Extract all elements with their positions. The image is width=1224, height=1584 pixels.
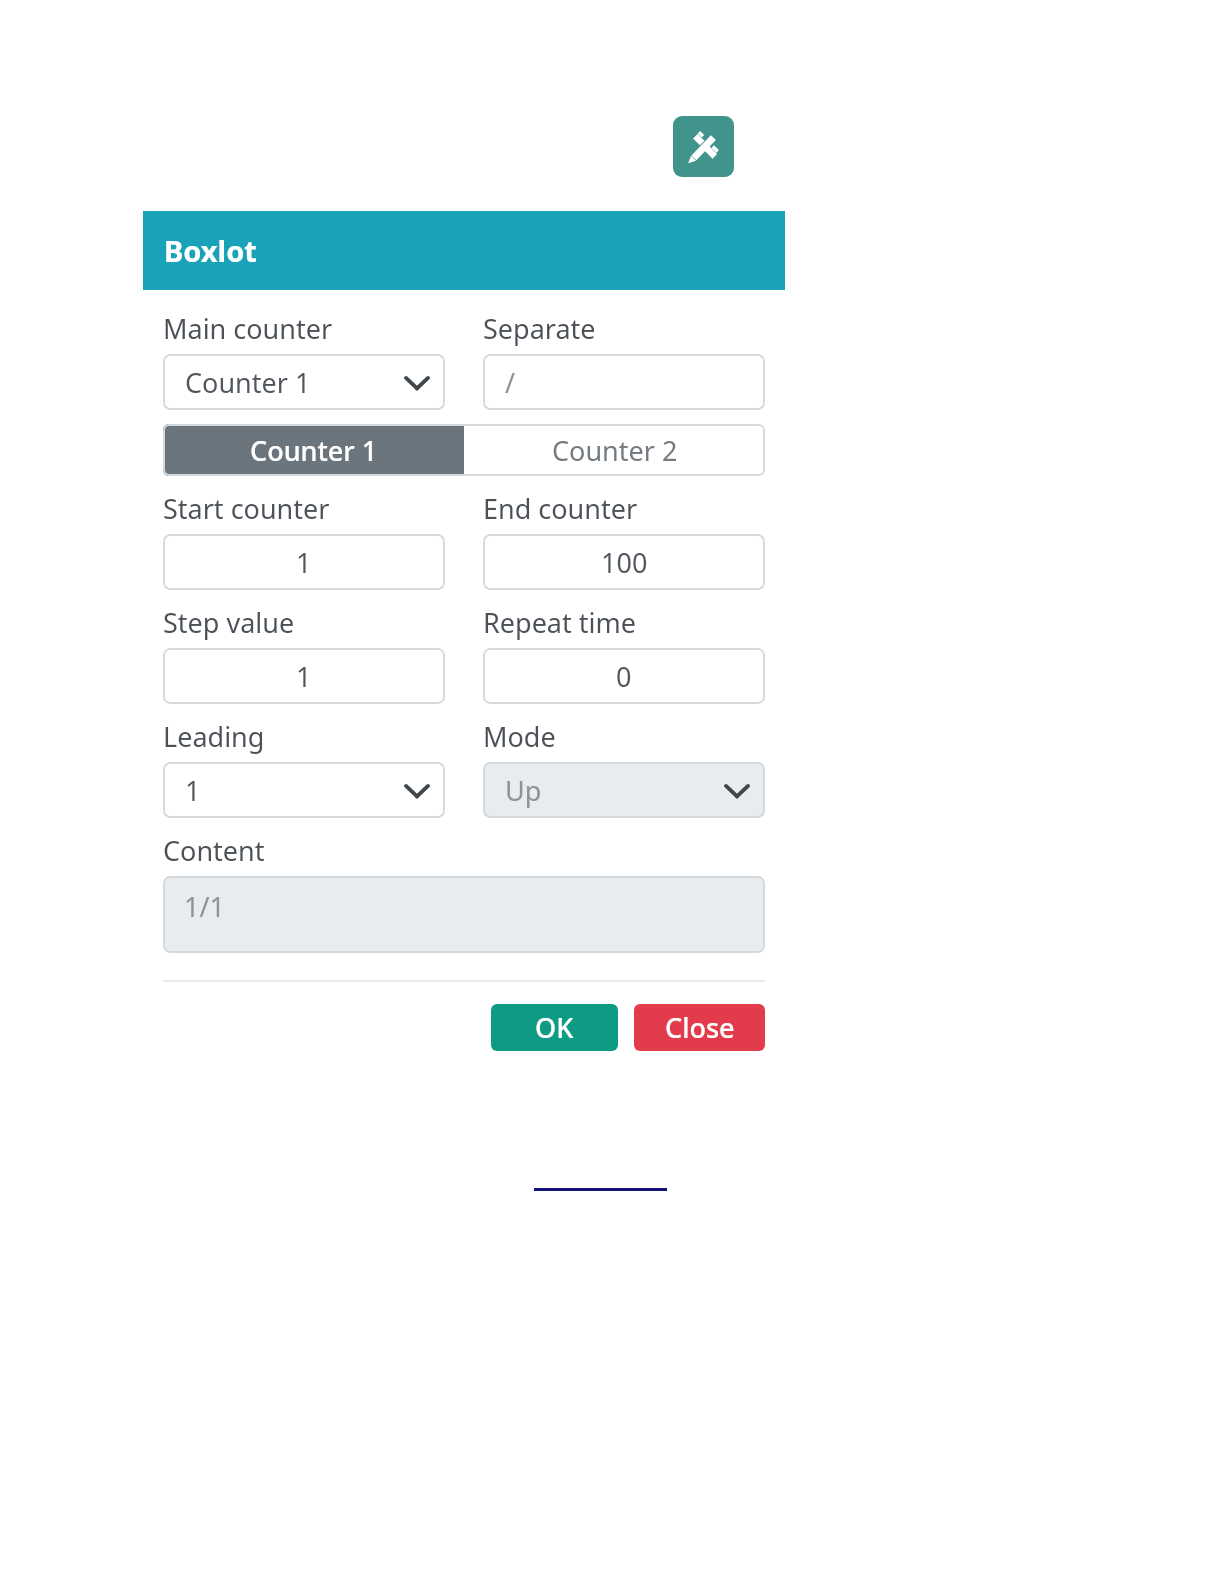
staticText: Mode — [483, 718, 556, 755]
staticText: Step value — [163, 604, 295, 641]
staticText: 1 — [296, 658, 312, 695]
staticText: Repeat time — [483, 604, 636, 641]
button[interactable]: Design tools — [673, 116, 734, 177]
staticText: 1 — [296, 544, 312, 581]
staticText: Content — [163, 832, 265, 869]
button[interactable]: / — [483, 354, 765, 410]
staticText: 1/1 — [184, 888, 225, 925]
staticText: OK — [535, 1009, 574, 1046]
button[interactable]: 1 — [163, 762, 445, 818]
staticText: End counter — [483, 490, 638, 527]
button[interactable]: Counter 1 — [163, 354, 445, 410]
staticText: / — [505, 364, 516, 401]
button[interactable]: 100 — [483, 534, 765, 590]
button[interactable]: 1/1 — [163, 876, 765, 953]
button[interactable]: 1 — [163, 648, 445, 704]
button[interactable]: 0 — [483, 648, 765, 704]
staticText: Counter 2 — [552, 432, 678, 469]
staticText: 0 — [616, 658, 632, 695]
button[interactable]: Up — [483, 762, 765, 818]
staticText: 100 — [601, 544, 648, 581]
staticText: Counter 1 — [185, 364, 406, 401]
button[interactable]: Counter 2 — [464, 424, 765, 476]
button[interactable]: 1 — [163, 534, 445, 590]
staticText: Counter 1 — [250, 432, 378, 469]
button[interactable]: Counter 1 — [163, 424, 464, 476]
staticText: Close — [665, 1009, 735, 1046]
staticText: Main counter — [163, 310, 333, 347]
staticText: Separate — [483, 310, 596, 347]
staticText: 1 — [185, 772, 406, 809]
staticText: Leading — [163, 718, 265, 755]
staticText: Boxlot — [164, 231, 257, 270]
button[interactable]: Close — [634, 1004, 765, 1051]
button[interactable]: OK — [491, 1004, 618, 1051]
staticText: Start counter — [163, 490, 330, 527]
staticText: Up — [505, 772, 726, 809]
